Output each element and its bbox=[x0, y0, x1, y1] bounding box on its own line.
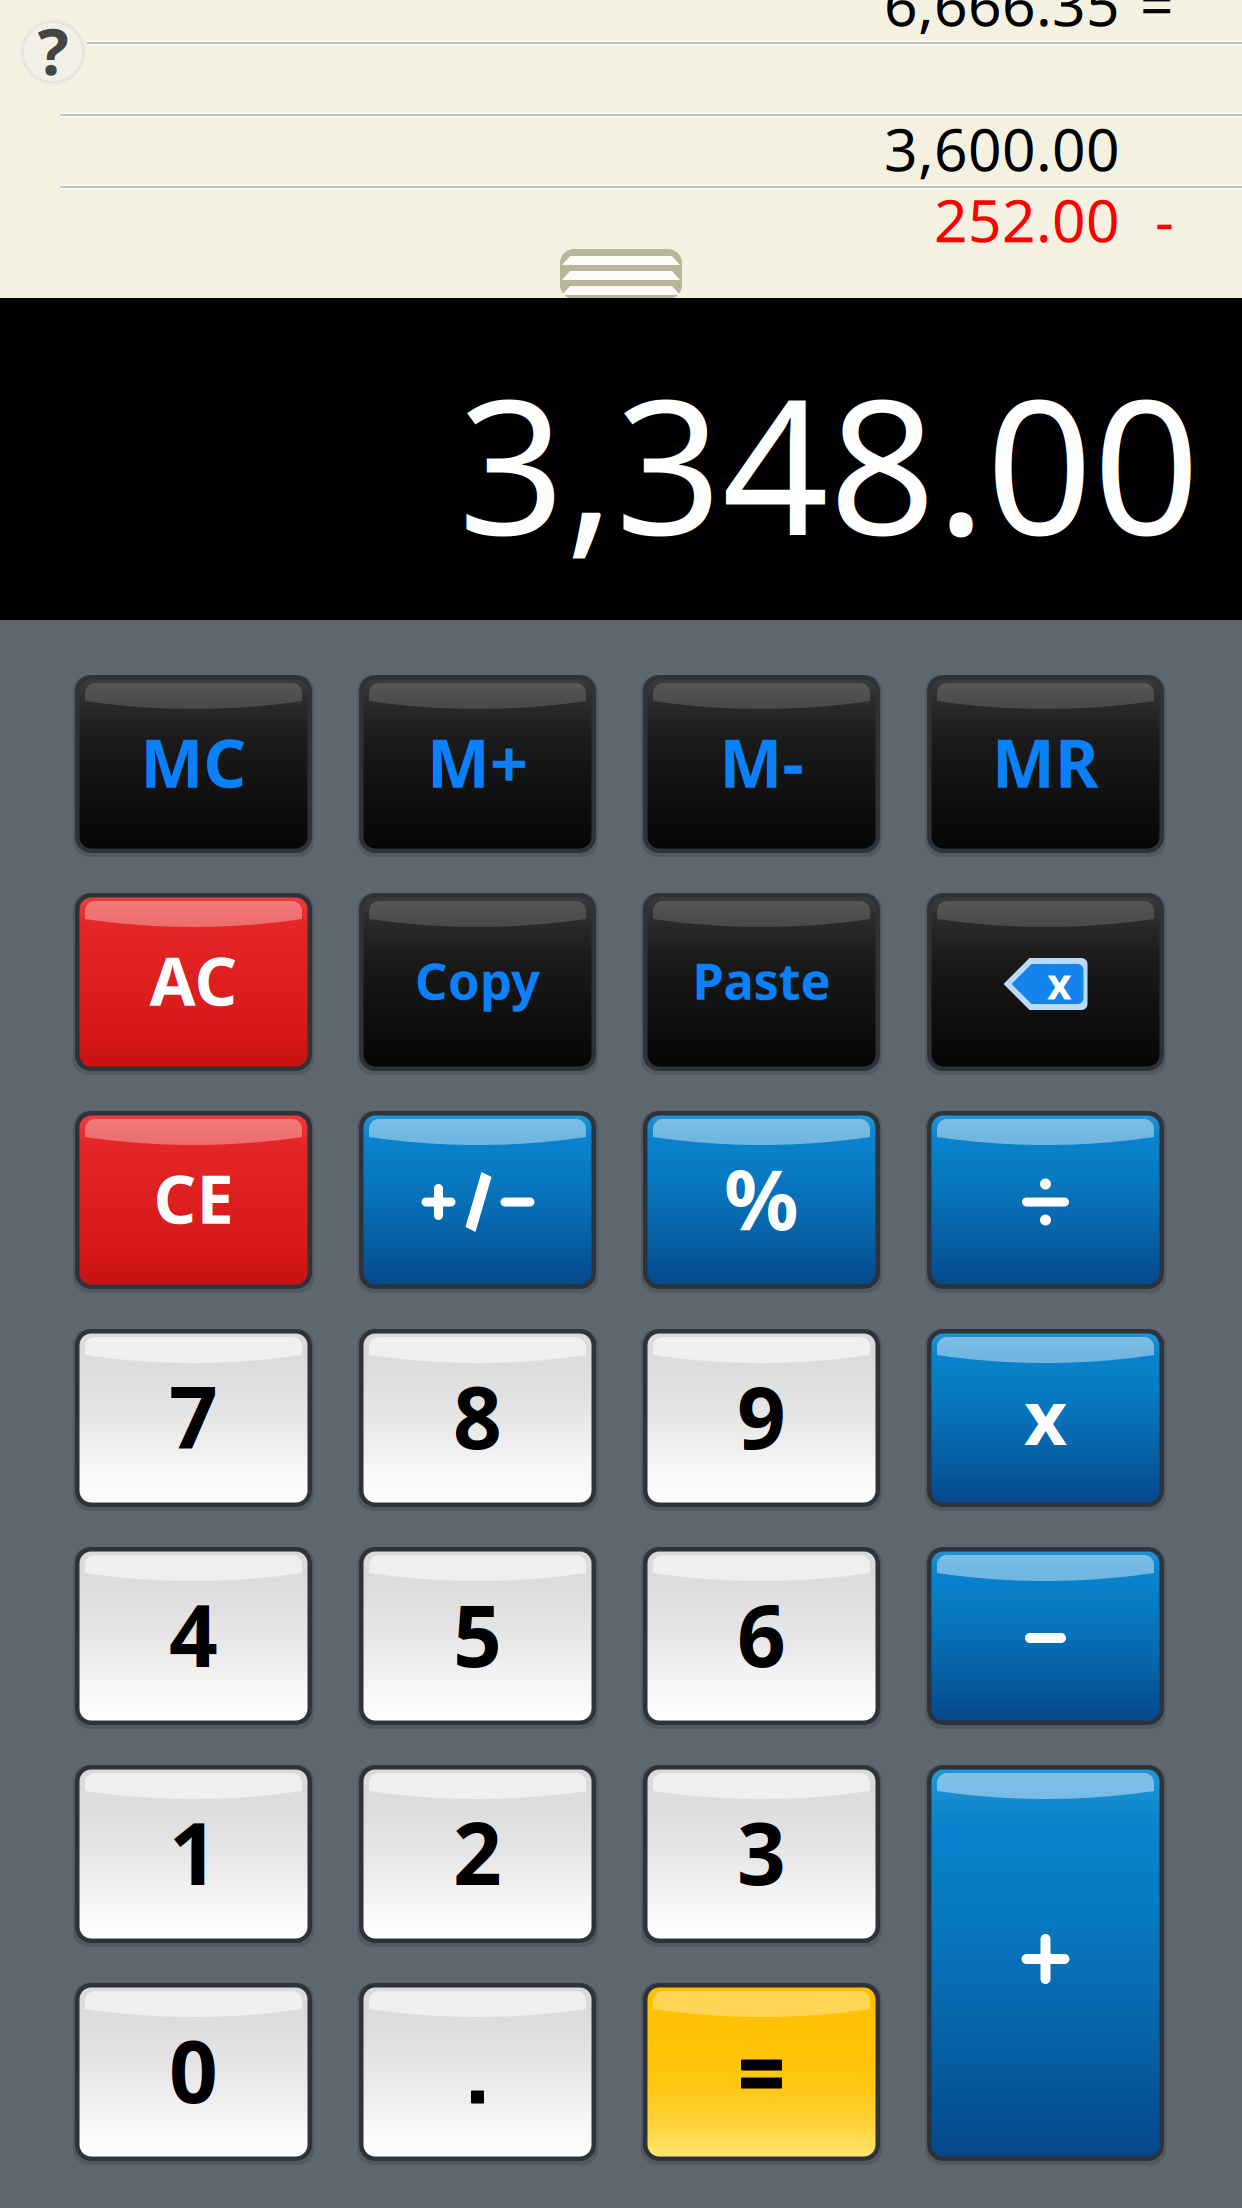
button[interactable]: 3 bbox=[641, 1765, 882, 1947]
button[interactable]: Help bbox=[15, 14, 91, 90]
staticText: 2 bbox=[453, 1795, 502, 1909]
staticText: 4 bbox=[169, 1577, 218, 1691]
button[interactable]: Copy bbox=[357, 893, 598, 1075]
button[interactable]: Paste bbox=[641, 893, 882, 1075]
staticText: AC bbox=[149, 936, 237, 1024]
button[interactable]: % bbox=[641, 1111, 882, 1293]
staticText: M+ bbox=[427, 718, 528, 806]
staticText: 3,348.00 bbox=[458, 338, 1200, 586]
button[interactable]: Equals bbox=[641, 1983, 882, 2165]
staticText: % bbox=[724, 1143, 799, 1253]
staticText: 0 bbox=[169, 2013, 218, 2127]
staticText: CE bbox=[153, 1154, 233, 1242]
staticText: Copy bbox=[415, 946, 540, 1014]
button[interactable]: Plus minus bbox=[357, 1111, 598, 1293]
staticText: x bbox=[1047, 955, 1072, 1011]
staticText: - bbox=[1155, 180, 1174, 258]
staticText: 252.00 bbox=[934, 180, 1120, 258]
staticText: MR bbox=[992, 718, 1099, 806]
staticText: x bbox=[1024, 1366, 1067, 1466]
button[interactable]: Plus bbox=[925, 1765, 1166, 2165]
staticText: 1 bbox=[169, 1795, 218, 1909]
button[interactable]: Backspace bbox=[925, 893, 1166, 1075]
button[interactable]: 1 bbox=[73, 1765, 314, 1947]
button[interactable]: 9 bbox=[641, 1329, 882, 1511]
button[interactable]: AC bbox=[73, 893, 314, 1075]
staticText: 6 bbox=[737, 1577, 786, 1691]
button[interactable]: Divide bbox=[925, 1111, 1166, 1293]
button[interactable]: MC bbox=[73, 675, 314, 857]
button[interactable]: 8 bbox=[357, 1329, 598, 1511]
button[interactable]: 5 bbox=[357, 1547, 598, 1729]
staticText: = bbox=[1140, 0, 1174, 42]
button[interactable]: M- bbox=[641, 675, 882, 857]
button[interactable]: x bbox=[925, 1329, 1166, 1511]
button[interactable]: Decimal point bbox=[357, 1983, 598, 2165]
staticText: 5 bbox=[453, 1577, 502, 1691]
staticText: 3 bbox=[737, 1795, 786, 1909]
button[interactable]: 0 bbox=[73, 1983, 314, 2165]
button[interactable]: Minus bbox=[925, 1547, 1166, 1729]
staticText: 3,600.00 bbox=[884, 109, 1120, 187]
button[interactable]: 2 bbox=[357, 1765, 598, 1947]
staticText: MC bbox=[140, 718, 246, 806]
staticText: 7 bbox=[169, 1359, 218, 1473]
button[interactable]: 4 bbox=[73, 1547, 314, 1729]
button[interactable]: CE bbox=[73, 1111, 314, 1293]
staticText: ? bbox=[37, 7, 68, 93]
staticText: 9 bbox=[737, 1359, 786, 1473]
button[interactable]: Show tape bbox=[560, 249, 682, 299]
staticText: Paste bbox=[692, 946, 830, 1014]
staticText: 8 bbox=[453, 1359, 502, 1473]
staticText: 6,666.35 bbox=[884, 0, 1120, 42]
button[interactable]: MR bbox=[925, 675, 1166, 857]
button[interactable]: 7 bbox=[73, 1329, 314, 1511]
staticText: M- bbox=[719, 718, 803, 806]
button[interactable]: M+ bbox=[357, 675, 598, 857]
button[interactable]: 6 bbox=[641, 1547, 882, 1729]
